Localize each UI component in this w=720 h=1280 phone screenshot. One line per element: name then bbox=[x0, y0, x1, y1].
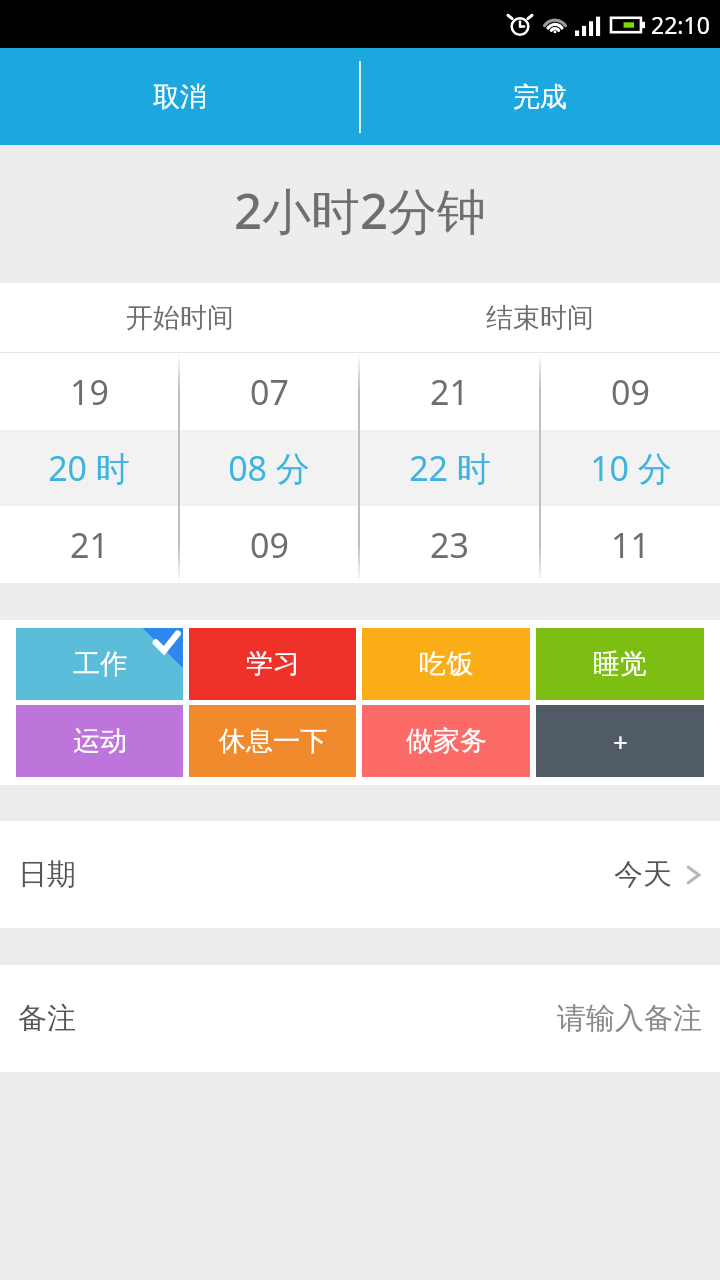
staticText: 07 bbox=[250, 369, 289, 415]
staticText: 备注 bbox=[18, 1000, 76, 1037]
button[interactable]: 休息一下 bbox=[189, 705, 356, 777]
staticText: 19 bbox=[70, 369, 109, 415]
button[interactable]: 做家务 bbox=[362, 705, 530, 777]
button[interactable]: 09 bbox=[541, 353, 720, 583]
button[interactable]: 07 bbox=[180, 353, 358, 583]
staticText: 22 时 bbox=[409, 445, 491, 491]
button[interactable]: 日期 bbox=[0, 821, 720, 928]
button[interactable]: 运动 bbox=[16, 705, 183, 777]
staticText: 请输入备注 bbox=[557, 1000, 702, 1037]
staticText: 完成 bbox=[513, 80, 567, 114]
staticText: 10 分 bbox=[590, 445, 672, 491]
button[interactable]: 工作 bbox=[16, 628, 183, 700]
button[interactable]: 备注 bbox=[0, 965, 720, 1072]
staticText: 吃饭 bbox=[419, 647, 473, 681]
staticText: 22:10 bbox=[651, 9, 710, 40]
staticText: 运动 bbox=[73, 724, 127, 758]
staticText: 20 时 bbox=[48, 445, 130, 491]
staticText: 睡觉 bbox=[593, 647, 647, 681]
button[interactable]: 完成 bbox=[360, 48, 720, 145]
button[interactable]: 19 bbox=[0, 353, 178, 583]
staticText: 休息一下 bbox=[219, 724, 327, 758]
staticText: 工作 bbox=[73, 647, 127, 681]
button[interactable]: 吃饭 bbox=[362, 628, 530, 700]
staticText: 取消 bbox=[153, 80, 207, 114]
staticText: 11 bbox=[611, 522, 650, 568]
staticText: + bbox=[613, 724, 628, 759]
staticText: 今天 bbox=[614, 856, 672, 893]
staticText: 2小时2分钟 bbox=[234, 177, 487, 244]
button[interactable]: 21 bbox=[360, 353, 539, 583]
staticText: 学习 bbox=[246, 647, 300, 681]
staticText: 做家务 bbox=[406, 724, 487, 758]
staticText: 21 bbox=[430, 369, 469, 415]
staticText: 23 bbox=[430, 522, 469, 568]
staticText: 21 bbox=[70, 522, 109, 568]
staticText: 开始时间 bbox=[126, 301, 234, 335]
button[interactable]: + bbox=[536, 705, 704, 777]
staticText: 09 bbox=[611, 369, 650, 415]
staticText: 08 分 bbox=[228, 445, 310, 491]
staticText: 日期 bbox=[18, 856, 76, 893]
staticText: 结束时间 bbox=[486, 301, 594, 335]
staticText: 09 bbox=[250, 522, 289, 568]
button[interactable]: 取消 bbox=[0, 48, 360, 145]
button[interactable]: 睡觉 bbox=[536, 628, 704, 700]
button[interactable]: 学习 bbox=[189, 628, 356, 700]
